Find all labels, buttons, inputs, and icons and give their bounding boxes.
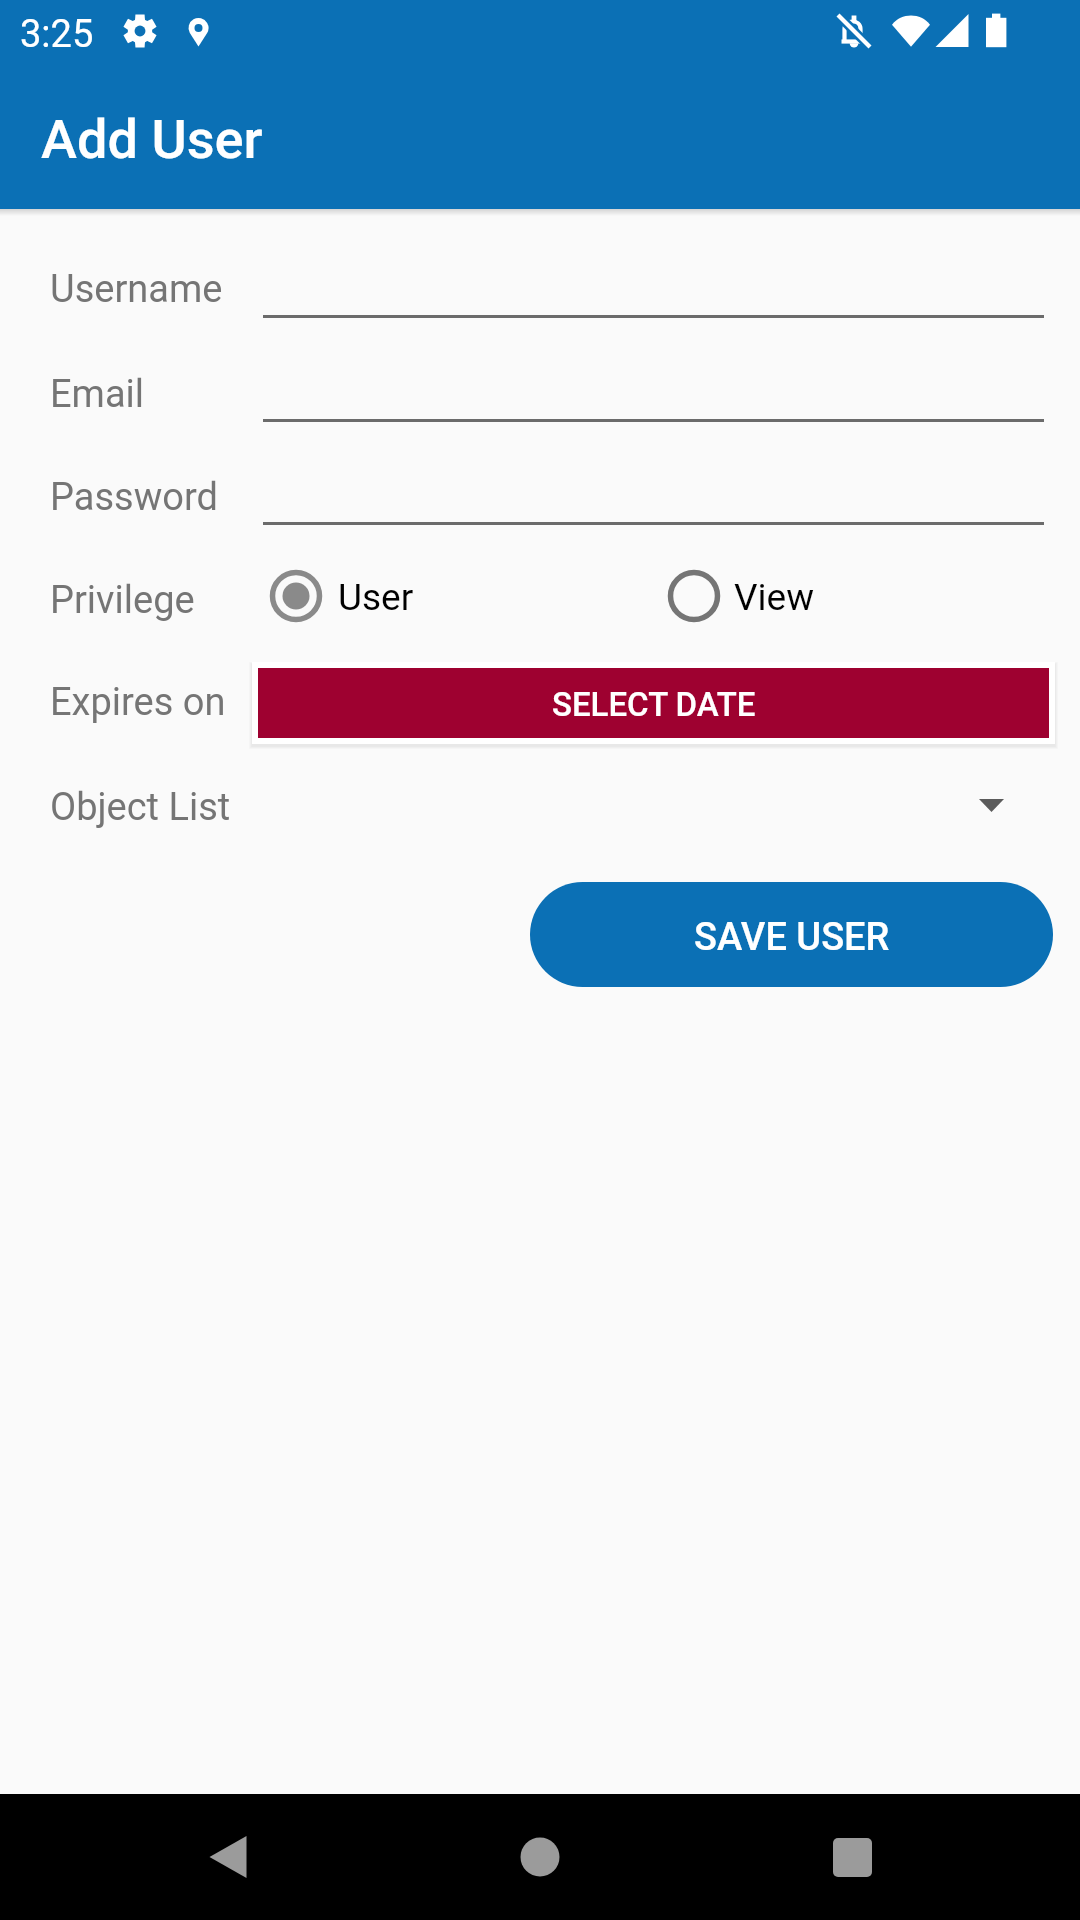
staticText: SAVE USER	[694, 915, 890, 960]
staticText: Email	[50, 372, 145, 417]
button[interactable]: SELECT DATE	[258, 668, 1049, 738]
staticText: User	[338, 576, 414, 619]
staticText: Add User	[41, 108, 263, 171]
button[interactable]: User	[263, 562, 450, 630]
staticText: Username	[50, 267, 223, 312]
button[interactable]: View	[661, 562, 846, 630]
button[interactable]: Home	[477, 1794, 603, 1920]
staticText: SELECT DATE	[552, 685, 756, 724]
staticText: 3:25	[20, 12, 94, 57]
staticText: Password	[50, 475, 218, 520]
button[interactable]: Recent apps	[789, 1794, 915, 1920]
button[interactable]: Back	[165, 1794, 291, 1920]
staticText: View	[734, 576, 814, 619]
button[interactable]: SAVE USER	[530, 882, 1053, 987]
staticText: Object List	[50, 785, 231, 830]
staticText: Expires on	[50, 680, 226, 725]
staticText: Privilege	[50, 578, 195, 623]
button[interactable]: Open object list	[949, 770, 1033, 840]
